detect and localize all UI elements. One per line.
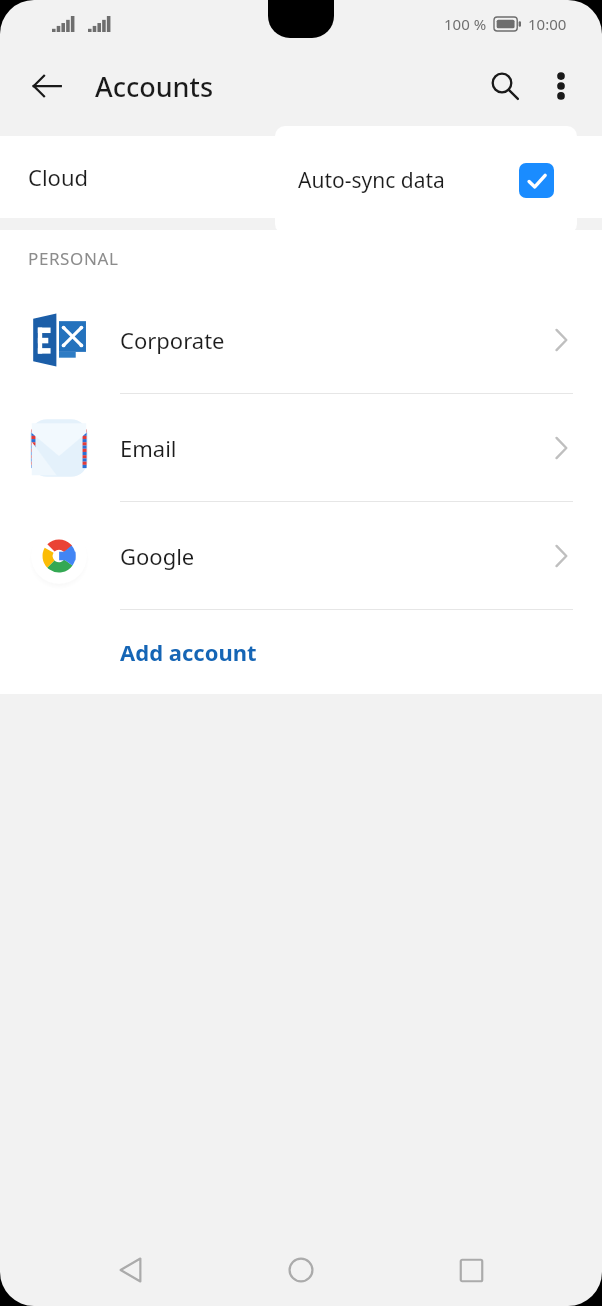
staticText: Corporate xyxy=(120,325,225,355)
button[interactable]: Search xyxy=(476,57,534,115)
staticText: PERSONAL xyxy=(28,247,119,270)
button[interactable]: More options xyxy=(534,59,588,113)
button[interactable]: Auto-sync data xyxy=(275,126,577,234)
button[interactable]: Home xyxy=(262,1234,340,1306)
staticText: Auto-sync data xyxy=(298,166,445,195)
button[interactable]: Recent apps xyxy=(432,1234,510,1306)
button[interactable]: Corporate xyxy=(0,286,602,393)
staticText: Add account xyxy=(120,637,257,667)
button[interactable]: Email xyxy=(0,394,602,501)
staticText: Accounts xyxy=(95,68,214,105)
button[interactable]: Back xyxy=(92,1234,170,1306)
button[interactable]: Back xyxy=(18,57,76,115)
staticText: Google xyxy=(120,541,195,571)
staticText: Email xyxy=(120,433,177,463)
button[interactable]: Cloud xyxy=(0,136,602,218)
button[interactable]: Add account xyxy=(0,610,602,694)
staticText: 10:00 xyxy=(528,14,567,34)
button[interactable]: Google xyxy=(0,502,602,609)
staticText: 100 % xyxy=(444,14,487,34)
staticText: Cloud xyxy=(28,162,89,192)
